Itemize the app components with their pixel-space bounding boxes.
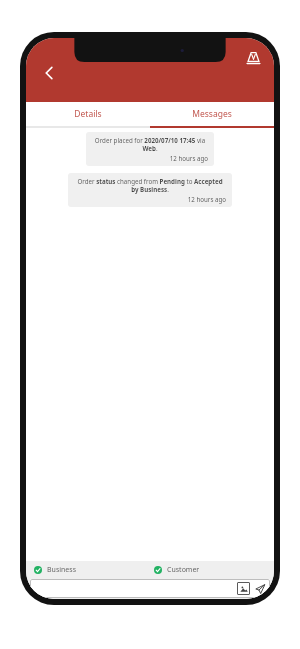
button[interactable]: Details [26,102,150,126]
button[interactable]: Attach image [237,582,250,595]
button[interactable]: Messages [150,102,274,126]
staticText: Messages [192,108,232,120]
button[interactable]: Order status changed from Pending to Acc… [68,173,232,207]
button[interactable]: Customer [154,561,274,578]
button[interactable]: Order stamp [238,42,268,72]
staticText: Business [47,565,77,575]
staticText: Details [74,108,102,120]
button[interactable]: Order placed for 2020/07/10 17:45 via We… [86,132,214,166]
button[interactable]: Back [32,56,66,90]
button[interactable]: Business [34,561,154,578]
staticText: Order status changed from Pending to Acc… [74,177,226,193]
staticText: 12 hours ago [92,154,208,162]
staticText: Customer [167,565,200,575]
staticText: 12 hours ago [74,195,226,203]
button[interactable]: Send [253,582,267,596]
button[interactable] [30,579,237,598]
staticText: Order placed for 2020/07/10 17:45 via We… [92,136,208,152]
